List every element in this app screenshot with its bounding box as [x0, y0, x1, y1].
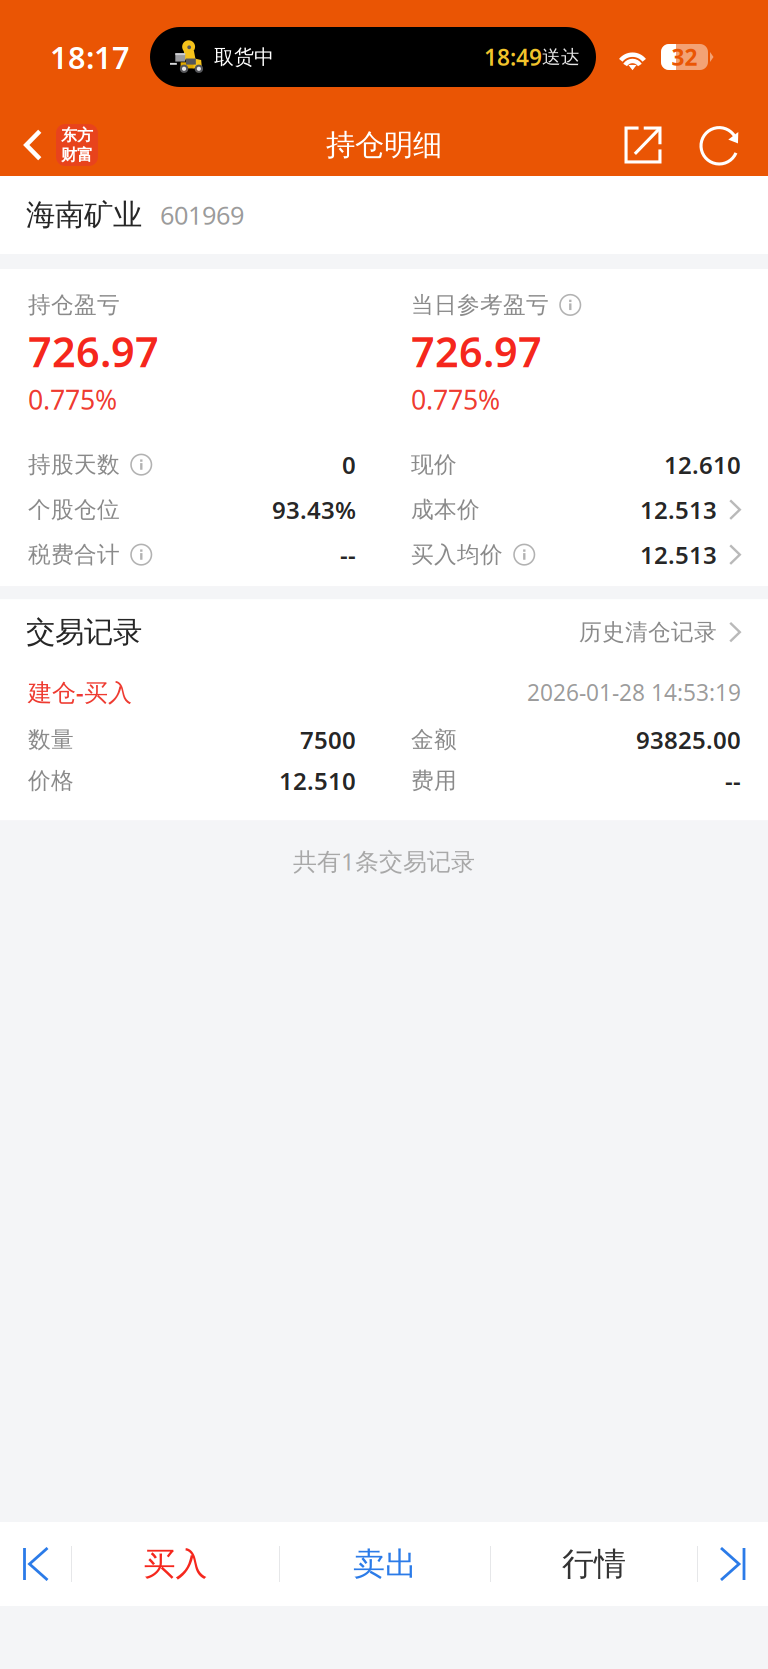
staticText: 0 — [342, 449, 356, 481]
staticText: 12.510 — [279, 765, 356, 797]
staticText: 金额 — [411, 726, 457, 753]
button[interactable]: 上一只 — [1, 1522, 71, 1606]
staticText: 成本价 — [411, 496, 480, 523]
staticText: 0.775% — [411, 382, 500, 417]
button[interactable]: 历史清仓记录 — [579, 599, 768, 665]
staticText: 12.513 — [640, 494, 717, 526]
staticText: 价格 — [28, 767, 74, 794]
staticText: 93.43% — [272, 494, 356, 526]
staticText: 18:49 — [484, 42, 542, 72]
staticText: 持仓盈亏 — [28, 291, 120, 319]
button[interactable]: 行情 — [491, 1522, 697, 1606]
staticText: 取货中 — [214, 45, 274, 69]
staticText: 726.97 — [411, 324, 542, 379]
staticText: 数量 — [28, 726, 74, 753]
staticText: 18:17 — [50, 37, 130, 77]
staticText: 32 — [671, 42, 697, 72]
staticText: 12.513 — [640, 539, 717, 571]
staticText: 费用 — [411, 767, 457, 794]
button[interactable]: 成本价 — [411, 487, 741, 532]
staticText: 东方 — [61, 125, 93, 145]
button[interactable]: 下一只 — [698, 1522, 767, 1606]
button[interactable]: 买入 — [72, 1522, 279, 1606]
staticText: 0.775% — [28, 382, 117, 417]
button[interactable]: 返回东方财富 — [0, 114, 108, 176]
staticText: 601969 — [160, 198, 244, 232]
staticText: 持股天数 — [28, 451, 120, 478]
staticText: 买入均价 — [411, 541, 503, 568]
staticText: -- — [725, 765, 741, 797]
staticText: 行情 — [562, 1544, 626, 1584]
staticText: 持仓明细 — [326, 127, 442, 163]
staticText: 税费合计 — [28, 541, 120, 568]
staticText: 现价 — [411, 451, 457, 478]
staticText: 93825.00 — [636, 724, 741, 756]
staticText: 财富 — [61, 145, 93, 165]
staticText: -- — [340, 539, 356, 571]
staticText: 建仓-买入 — [28, 676, 132, 708]
staticText: 送达 — [542, 45, 580, 68]
button[interactable]: 刷新 — [690, 114, 752, 176]
staticText: 当日参考盈亏 — [411, 291, 549, 319]
button[interactable]: 卖出 — [280, 1522, 490, 1606]
staticText: 12.610 — [664, 449, 741, 481]
staticText: 7500 — [300, 724, 356, 756]
staticText: 卖出 — [353, 1544, 417, 1584]
staticText: 2026-01-28 14:53:19 — [527, 677, 741, 707]
staticText: 个股仓位 — [28, 496, 120, 523]
staticText: 交易记录 — [26, 614, 142, 650]
button[interactable]: 买入均价 — [411, 532, 741, 577]
button[interactable]: 分享 — [612, 114, 674, 176]
staticText: 买入 — [143, 1544, 207, 1584]
staticText: 历史清仓记录 — [579, 618, 717, 646]
staticText: 726.97 — [28, 324, 159, 379]
staticText: 海南矿业 — [26, 197, 142, 233]
staticText: 共有1条交易记录 — [293, 845, 475, 877]
